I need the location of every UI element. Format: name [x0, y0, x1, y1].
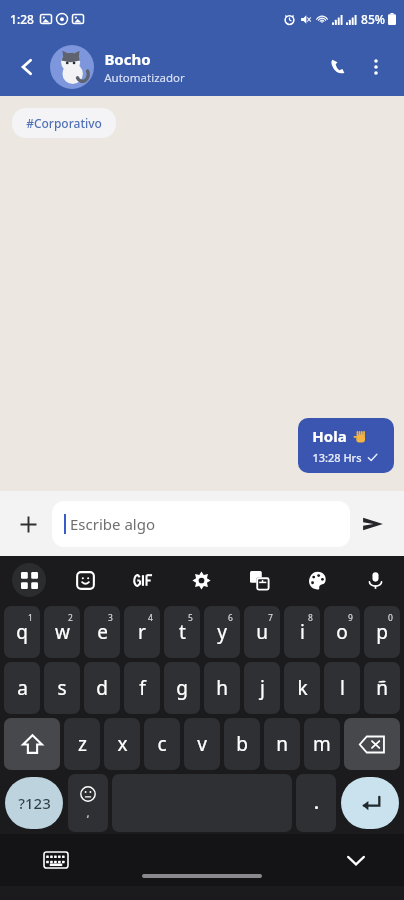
- button[interactable]: b: [224, 718, 260, 770]
- button[interactable]: g: [164, 662, 200, 714]
- staticText: u: [256, 619, 268, 645]
- button[interactable]: l: [324, 662, 360, 714]
- staticText: 9: [348, 612, 353, 624]
- button[interactable]: j: [244, 662, 280, 714]
- staticText: s: [57, 675, 67, 701]
- button[interactable]: Voice input: [346, 556, 404, 604]
- button[interactable]: .: [296, 774, 336, 832]
- button[interactable]: d: [84, 662, 120, 714]
- button[interactable]: Stickers: [57, 556, 114, 604]
- button[interactable]: o: [324, 606, 360, 658]
- staticText: r: [138, 619, 146, 645]
- button[interactable]: Bocho: [104, 49, 318, 86]
- staticText: i: [300, 619, 305, 645]
- staticText: 0: [388, 612, 393, 624]
- staticText: c: [157, 731, 167, 757]
- staticText: ?123: [18, 793, 51, 813]
- staticText: m: [313, 731, 331, 757]
- staticText: 8: [308, 612, 313, 624]
- staticText: z: [78, 731, 87, 757]
- staticText: o: [336, 619, 348, 645]
- staticText: l: [340, 675, 345, 701]
- button[interactable]: n: [264, 718, 300, 770]
- button[interactable]: Call: [318, 47, 358, 87]
- staticText: 3: [108, 612, 113, 624]
- staticText: Hola: [312, 426, 347, 446]
- staticText: p: [376, 619, 388, 645]
- staticText: w: [55, 619, 70, 645]
- button[interactable]: c: [144, 718, 180, 770]
- staticText: ñ: [376, 675, 388, 701]
- button[interactable]: a: [4, 662, 40, 714]
- staticText: d: [96, 675, 108, 701]
- button[interactable]: Escribe algo: [52, 501, 350, 547]
- button[interactable]: k: [284, 662, 320, 714]
- staticText: .: [314, 792, 319, 814]
- button[interactable]: Send: [350, 501, 396, 547]
- button[interactable]: Enter: [341, 777, 399, 829]
- button[interactable]: x: [104, 718, 140, 770]
- button[interactable]: ñ: [364, 662, 400, 714]
- staticText: y: [217, 619, 227, 645]
- button[interactable]: u: [244, 606, 280, 658]
- button[interactable]: Hide keyboard: [338, 842, 374, 878]
- button[interactable]: q: [4, 606, 40, 658]
- button[interactable]: Back: [10, 50, 44, 84]
- staticText: q: [16, 619, 28, 645]
- staticText: Automatizador: [104, 70, 185, 86]
- staticText: 13:28 Hrs: [312, 450, 362, 465]
- button[interactable]: p: [364, 606, 400, 658]
- button[interactable]: w: [44, 606, 80, 658]
- button[interactable]: More options: [358, 49, 394, 85]
- staticText: 7: [268, 612, 273, 624]
- button[interactable]: GIF: [114, 556, 172, 604]
- staticText: t: [179, 619, 186, 645]
- button[interactable]: Contact photo: [50, 45, 94, 89]
- button[interactable]: m: [304, 718, 340, 770]
- staticText: 6: [228, 612, 233, 624]
- button[interactable]: v: [184, 718, 220, 770]
- staticText: x: [117, 731, 128, 757]
- button[interactable]: Shift: [4, 718, 60, 770]
- button[interactable]: e: [84, 606, 120, 658]
- staticText: h: [216, 675, 228, 701]
- button[interactable]: r: [124, 606, 160, 658]
- staticText: Escribe algo: [70, 514, 155, 534]
- button[interactable]: t: [164, 606, 200, 658]
- staticText: f: [139, 675, 146, 701]
- button[interactable]: s: [44, 662, 80, 714]
- button[interactable]: y: [204, 606, 240, 658]
- button[interactable]: h: [204, 662, 240, 714]
- button[interactable]: z: [64, 718, 100, 770]
- staticText: 1: [28, 612, 33, 624]
- button[interactable]: Emoji: [68, 774, 108, 832]
- staticText: k: [297, 675, 308, 701]
- staticText: j: [260, 675, 265, 701]
- staticText: 2: [68, 612, 73, 624]
- button[interactable]: #Corporativo: [12, 108, 116, 138]
- staticText: ,: [86, 805, 90, 820]
- button[interactable]: Hola: [298, 418, 394, 473]
- button[interactable]: Settings: [172, 556, 230, 604]
- button[interactable]: Translate: [230, 556, 288, 604]
- button[interactable]: Apps: [0, 556, 57, 604]
- staticText: 5: [188, 612, 193, 624]
- button[interactable]: Change keyboard: [38, 842, 74, 878]
- staticText: 1:28: [10, 11, 34, 27]
- staticText: g: [176, 675, 188, 701]
- button[interactable]: i: [284, 606, 320, 658]
- staticText: 4: [148, 612, 153, 624]
- staticText: Bocho: [104, 49, 151, 69]
- button[interactable]: Add attachment: [8, 504, 48, 544]
- staticText: 85%: [361, 11, 385, 27]
- staticText: a: [17, 675, 28, 701]
- staticText: #Corporativo: [26, 115, 102, 131]
- button[interactable]: ?123: [5, 777, 63, 829]
- staticText: b: [236, 731, 248, 757]
- button[interactable]: Themes: [288, 556, 346, 604]
- button[interactable]: f: [124, 662, 160, 714]
- staticText: v: [197, 731, 207, 757]
- button[interactable]: Backspace: [344, 718, 400, 770]
- staticText: e: [97, 619, 108, 645]
